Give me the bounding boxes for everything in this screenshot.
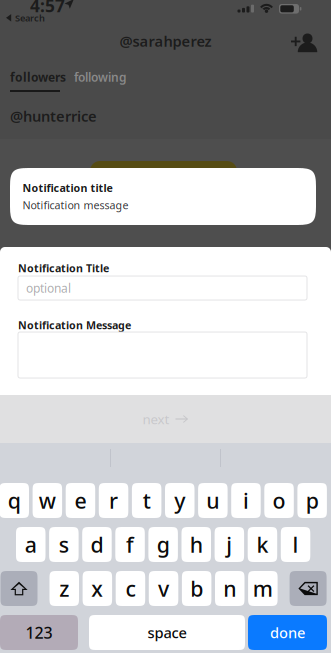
button[interactable]: done (248, 615, 327, 650)
button[interactable]: space (89, 615, 245, 650)
button[interactable]: Delete (290, 571, 327, 606)
staticText: k (256, 530, 268, 559)
button[interactable]: q (0, 483, 29, 518)
button[interactable]: r (99, 483, 128, 518)
staticText: u (206, 486, 219, 515)
button[interactable]: t (132, 483, 161, 518)
button[interactable]: f (115, 527, 145, 562)
staticText: g (157, 530, 170, 559)
staticText: a (25, 530, 37, 559)
staticText: Search (15, 12, 45, 24)
staticText: x (91, 574, 103, 603)
button[interactable]: Notification Message field (18, 332, 307, 378)
staticText: optional (26, 280, 71, 296)
button[interactable]: i (231, 483, 261, 518)
button[interactable]: j (215, 527, 244, 562)
staticText: y (174, 486, 185, 515)
button[interactable]: Add person (285, 27, 323, 59)
button[interactable]: e (66, 483, 95, 518)
button[interactable]: n (215, 571, 244, 606)
button[interactable]: l (281, 527, 310, 562)
staticText: 4:57 (30, 0, 65, 17)
button[interactable]: w (33, 483, 62, 518)
staticText: Notification Title (18, 261, 109, 275)
button[interactable]: followers (10, 70, 90, 92)
staticText: @hunterrice (10, 106, 97, 126)
button[interactable]: c (116, 571, 145, 606)
button[interactable]: Notification Title field (18, 276, 307, 300)
button[interactable]: Shift (0, 571, 37, 606)
staticText: p (306, 486, 319, 515)
staticText: h (190, 530, 203, 559)
staticText: d (90, 530, 103, 559)
staticText: t (143, 486, 151, 515)
staticText: 123 (25, 622, 52, 643)
staticText: q (8, 486, 21, 515)
staticText: done (270, 623, 305, 642)
staticText: next (142, 410, 169, 428)
staticText: o (273, 486, 286, 515)
staticText: @sarahperez (119, 31, 211, 51)
staticText: Notification title (22, 181, 112, 195)
button[interactable]: z (49, 571, 79, 606)
button[interactable]: x (83, 571, 112, 606)
button[interactable]: 123 (0, 615, 78, 650)
staticText: following (74, 69, 127, 85)
button[interactable]: m (248, 571, 278, 606)
staticText: n (223, 574, 236, 603)
staticText: e (74, 486, 86, 515)
button[interactable]: @hunterrice (10, 109, 150, 123)
button[interactable]: following (74, 70, 154, 84)
staticText: Notification message (22, 198, 128, 212)
button[interactable]: Search (0, 10, 51, 26)
staticText: m (253, 574, 273, 603)
staticText: s (59, 530, 69, 559)
staticText: f (126, 530, 134, 559)
staticText: followers (10, 69, 66, 85)
button[interactable]: s (49, 527, 79, 562)
button[interactable]: g (148, 527, 178, 562)
button[interactable]: a (16, 527, 45, 562)
staticText: c (125, 574, 135, 603)
button[interactable]: o (264, 483, 294, 518)
staticText: i (243, 486, 249, 515)
button[interactable]: k (248, 527, 277, 562)
staticText: b (190, 574, 203, 603)
button[interactable]: h (181, 527, 211, 562)
button[interactable]: u (198, 483, 228, 518)
button[interactable]: y (165, 483, 194, 518)
staticText: z (59, 574, 69, 603)
staticText: j (226, 530, 232, 559)
staticText: r (109, 486, 118, 515)
staticText: Notification Message (18, 318, 131, 332)
button[interactable]: v (149, 571, 178, 606)
staticText: space (147, 623, 186, 642)
staticText: v (158, 574, 169, 603)
button[interactable]: d (82, 527, 112, 562)
staticText: l (293, 530, 299, 559)
staticText: w (39, 486, 56, 515)
button[interactable]: b (182, 571, 211, 606)
button[interactable]: p (297, 483, 327, 518)
